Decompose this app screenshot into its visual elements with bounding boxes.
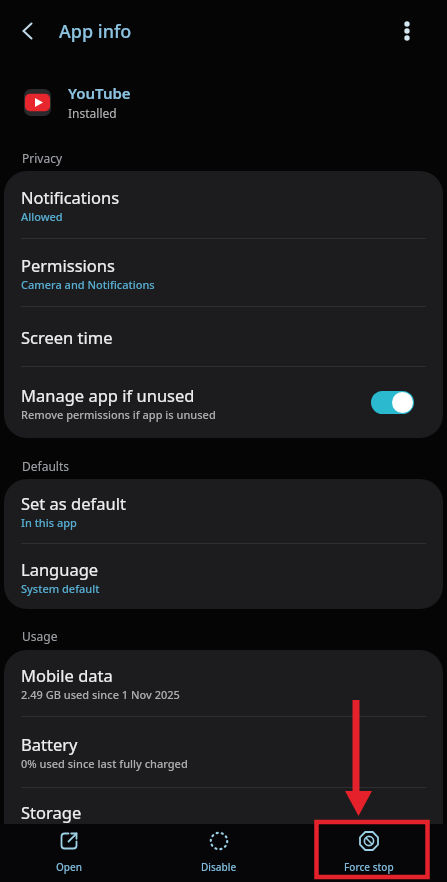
staticText: Manage app if unused <box>21 384 195 406</box>
staticText: 2.49 GB used since 1 Nov 2025 <box>21 687 180 702</box>
staticText: YouTube <box>68 83 131 103</box>
staticText: Permissions <box>21 254 115 276</box>
button[interactable]: Set as default <box>4 479 443 543</box>
staticText: Language <box>21 558 99 580</box>
staticText: Notifications <box>21 186 120 208</box>
staticText: App info <box>59 19 132 44</box>
button[interactable]: Mobile data <box>4 650 443 716</box>
button[interactable] <box>391 15 423 47</box>
staticText: Remove permissions if app is unused <box>21 407 216 422</box>
staticText: Force stop <box>344 860 394 874</box>
staticText: Open <box>56 860 83 874</box>
button[interactable]: Open <box>19 824 119 882</box>
button[interactable]: Disable <box>169 824 269 882</box>
button[interactable]: Storage <box>4 788 443 824</box>
button[interactable]: Battery <box>4 717 443 787</box>
staticText: Camera and Notifications <box>21 277 155 292</box>
staticText: Installed <box>68 105 117 121</box>
staticText: Mobile data <box>21 664 113 686</box>
button[interactable]: Language <box>4 544 443 609</box>
button[interactable]: Screen time <box>4 307 443 366</box>
staticText: Storage <box>21 801 82 823</box>
staticText: 0% used since last fully charged <box>21 756 188 771</box>
staticText: Usage <box>22 628 58 644</box>
staticText: Privacy <box>22 150 63 166</box>
button[interactable] <box>14 17 42 45</box>
button[interactable]: Permissions <box>4 239 443 306</box>
staticText: Allowed <box>21 209 63 224</box>
staticText: In this app <box>21 515 77 530</box>
button[interactable]: Force stop <box>319 824 419 882</box>
button[interactable]: Notifications <box>4 171 443 238</box>
button[interactable] <box>371 391 414 414</box>
staticText: Set as default <box>21 492 126 514</box>
staticText: Battery <box>21 733 78 755</box>
staticText: Disable <box>201 860 237 874</box>
button[interactable]: Manage app if unused <box>4 367 443 438</box>
staticText: Defaults <box>22 458 69 474</box>
staticText: System default <box>21 581 100 596</box>
staticText: Screen time <box>21 326 113 348</box>
